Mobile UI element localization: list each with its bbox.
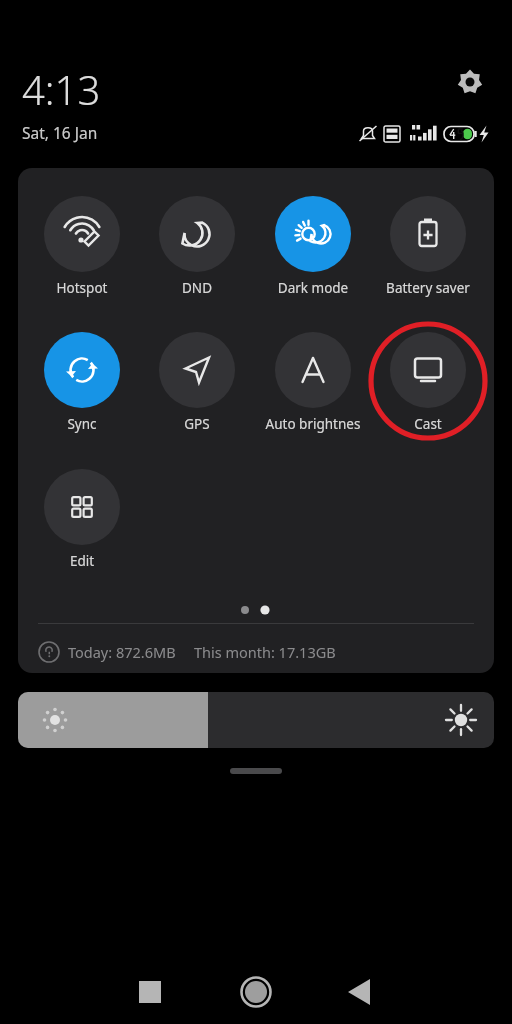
staticText: GPS — [141, 415, 253, 433]
button[interactable]: Today: 872.6MB — [38, 633, 474, 671]
staticText: Today: 872.6MB — [68, 642, 176, 662]
button[interactable]: Hotspot — [26, 196, 138, 306]
staticText: Edit — [26, 552, 138, 570]
button[interactable]: Home — [234, 970, 278, 1014]
button[interactable]: Recents — [128, 970, 172, 1014]
staticText: Dark mode — [257, 279, 369, 297]
button[interactable]: DND — [141, 196, 253, 306]
staticText: Sync — [26, 415, 138, 433]
button[interactable]: GPS — [141, 332, 253, 442]
staticText: This month: 17.13GB — [194, 642, 336, 662]
staticText: Auto brightnes — [257, 415, 369, 433]
button[interactable]: Battery saver — [372, 196, 484, 306]
button[interactable]: Auto brightnes — [257, 332, 369, 442]
button[interactable]: Settings — [447, 59, 493, 105]
staticText: DND — [141, 279, 253, 297]
button[interactable]: Sync — [26, 332, 138, 442]
button[interactable]: Edit — [26, 469, 138, 579]
button[interactable]: Back — [338, 970, 382, 1014]
button[interactable]: Cast — [372, 332, 484, 442]
button[interactable]: Brightness — [18, 692, 494, 748]
staticText: 4:13 — [22, 62, 101, 116]
staticText: Sat, 16 Jan — [22, 122, 98, 143]
staticText: Battery saver — [372, 279, 484, 297]
staticText: Hotspot — [26, 279, 138, 297]
staticText: Cast — [372, 415, 484, 433]
button[interactable]: Dark mode — [257, 196, 369, 306]
